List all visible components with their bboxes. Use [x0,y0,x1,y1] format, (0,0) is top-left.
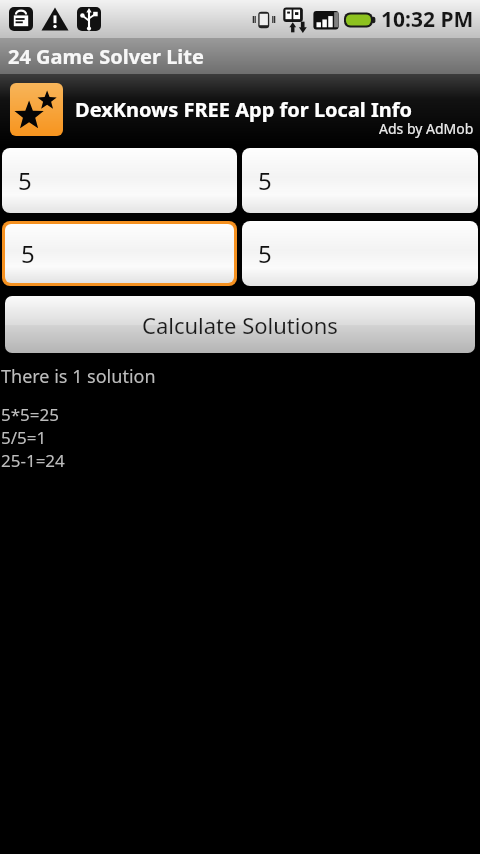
staticText: Ads by AdMob [379,119,474,138]
staticText: 5 [258,164,272,197]
staticText: 5 [18,164,32,197]
button[interactable]: DexKnows FREE App for Local Info [0,74,480,145]
staticText: There is 1 solution [1,364,156,389]
staticText: 10:32 PM [381,5,474,34]
staticText: 25-1=24 [1,449,65,472]
button[interactable]: Calculate Solutions [5,296,475,353]
button[interactable]: 5 [5,224,234,283]
staticText: DexKnows FREE App for Local Info [75,96,413,123]
button[interactable]: 5 [242,148,478,213]
staticText: 5 [21,237,35,270]
staticText: 5*5=25 [1,403,59,426]
staticText: Calculate Solutions [142,310,338,340]
staticText: 5 [258,237,272,270]
button[interactable]: 5 [242,221,478,286]
button[interactable]: 5 [2,148,237,213]
staticText: 5/5=1 [1,426,47,449]
staticText: 24 Game Solver Lite [8,43,204,70]
